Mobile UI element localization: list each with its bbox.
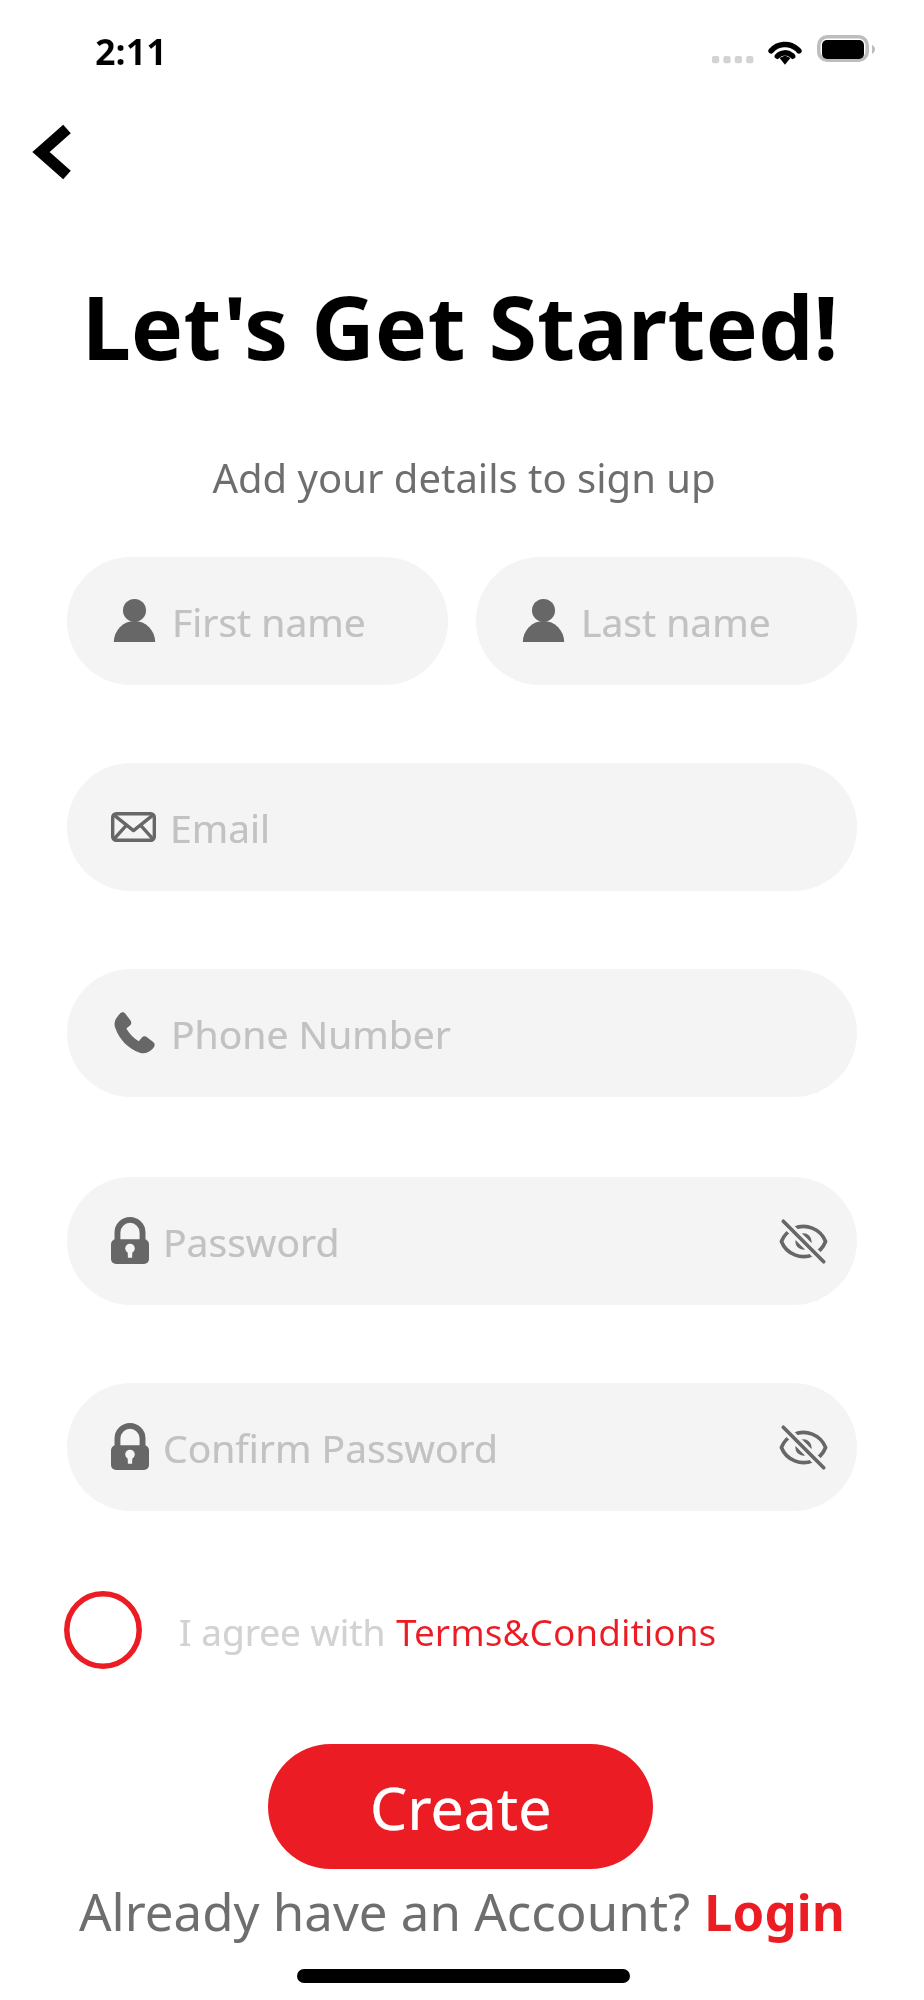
button[interactable]: Last name (476, 557, 857, 685)
button[interactable]: Create (268, 1744, 653, 1869)
button[interactable]: First name (67, 557, 448, 685)
staticText: 2:11 (95, 27, 167, 76)
staticText: I agree with (179, 1606, 396, 1656)
button[interactable]: Login (704, 1876, 846, 1945)
staticText: Email (170, 801, 271, 854)
staticText: Confirm Password (163, 1421, 498, 1474)
button[interactable]: Show password (777, 1209, 829, 1273)
staticText: Password (163, 1215, 340, 1268)
staticText: Let's Get Started! (0, 266, 922, 386)
button[interactable]: Back (8, 98, 96, 186)
staticText: Create (370, 1767, 552, 1847)
button[interactable]: Confirm Password (67, 1383, 857, 1511)
button[interactable]: Password (67, 1177, 857, 1305)
button[interactable]: Phone Number (67, 969, 857, 1097)
button[interactable]: Agree to terms (55, 1582, 151, 1678)
staticText: First name (172, 595, 366, 648)
button[interactable]: Email (67, 763, 857, 891)
staticText: Add your details to sign up (2, 450, 924, 504)
button[interactable]: Terms&Conditions (396, 1606, 717, 1656)
staticText: Phone Number (171, 1007, 451, 1060)
staticText: Already have an Account? (79, 1876, 704, 1945)
staticText: Last name (581, 595, 771, 648)
button[interactable]: Show password (777, 1415, 829, 1479)
